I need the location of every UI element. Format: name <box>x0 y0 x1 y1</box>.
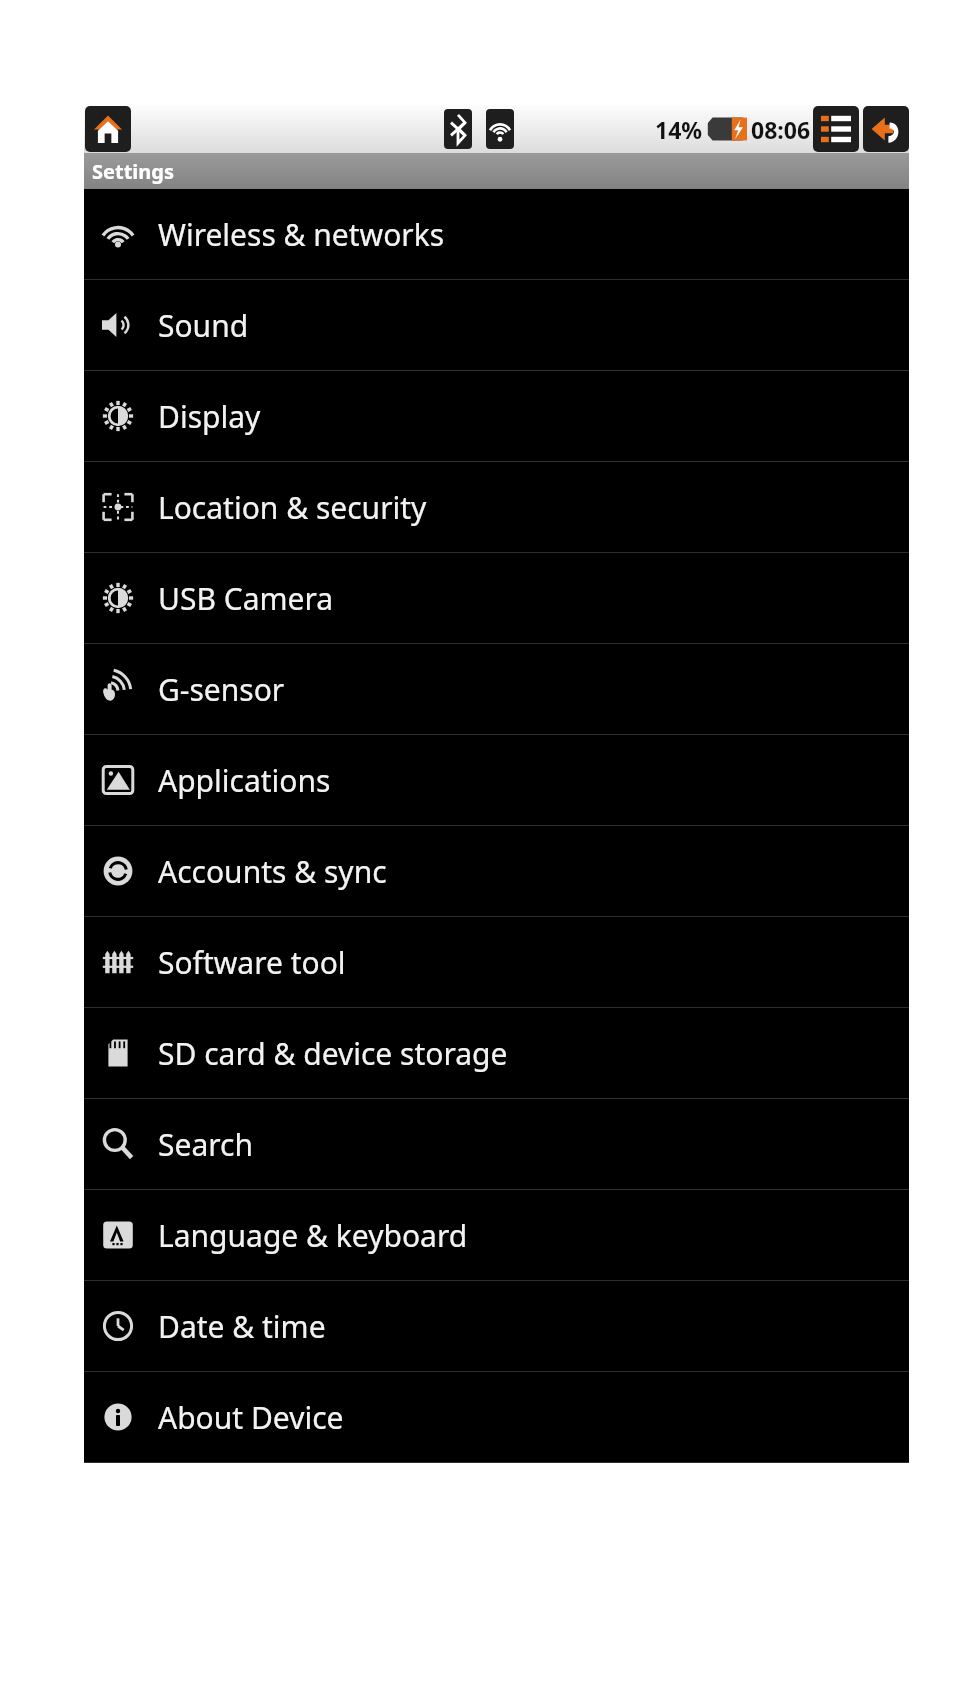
button[interactable]: Applications <box>84 735 909 825</box>
staticText: Location & security <box>158 487 427 528</box>
button[interactable]: Date & time <box>84 1281 909 1371</box>
staticText: Sound <box>158 305 249 346</box>
staticText: Date & time <box>158 1306 326 1347</box>
staticText: Wireless & networks <box>158 214 445 255</box>
button[interactable]: About Device <box>84 1372 909 1462</box>
staticText: Software tool <box>158 942 346 983</box>
button[interactable]: Search <box>84 1099 909 1189</box>
staticText: Display <box>158 396 261 437</box>
button[interactable]: Language & keyboard <box>84 1190 909 1280</box>
button[interactable]: G-sensor <box>84 644 909 734</box>
staticText: Applications <box>158 760 331 801</box>
staticText: Settings <box>92 158 174 185</box>
button[interactable]: USB Camera <box>84 553 909 643</box>
staticText: SD card & device storage <box>158 1033 508 1074</box>
button[interactable]: Home <box>85 106 131 152</box>
button[interactable]: Back <box>863 106 909 152</box>
staticText: 14% <box>655 114 703 145</box>
button[interactable]: Display <box>84 371 909 461</box>
staticText: Search <box>158 1124 253 1165</box>
button[interactable]: Menu <box>813 106 859 152</box>
button[interactable]: SD card & device storage <box>84 1008 909 1098</box>
staticText: Accounts & sync <box>158 851 387 892</box>
staticText: About Device <box>158 1397 344 1438</box>
staticText: Language & keyboard <box>158 1215 468 1256</box>
button[interactable]: Accounts & sync <box>84 826 909 916</box>
button[interactable]: Location & security <box>84 462 909 552</box>
button[interactable]: Sound <box>84 280 909 370</box>
staticText: USB Camera <box>158 578 334 619</box>
staticText: 08:06 <box>751 114 811 145</box>
button[interactable]: Software tool <box>84 917 909 1007</box>
button[interactable]: Wireless & networks <box>84 189 909 279</box>
staticText: G-sensor <box>158 669 285 710</box>
